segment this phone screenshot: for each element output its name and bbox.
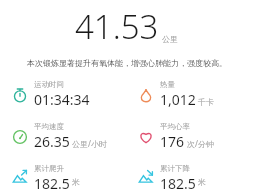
staticText: 累计爬升 — [34, 164, 64, 173]
staticText: 累计下降 — [160, 164, 190, 173]
other: 平均速度 — [12, 129, 28, 145]
staticText: 千卡 — [198, 97, 214, 107]
button[interactable]: 累计下降 — [126, 163, 253, 190]
staticText: 次/分钟 — [187, 138, 214, 149]
staticText: 182.5 — [160, 174, 196, 189]
staticText: 平均速度 — [34, 122, 64, 131]
staticText: 平均心率 — [160, 122, 190, 131]
staticText: 41.53 — [75, 4, 159, 49]
other: 热量 — [138, 87, 154, 103]
button[interactable]: 平均速度 — [0, 121, 126, 152]
button[interactable]: 累计爬升 — [0, 163, 126, 190]
staticText: 26.35 — [34, 132, 70, 151]
staticText: 01:34:34 — [34, 90, 90, 109]
staticText: 182.5 — [34, 174, 70, 189]
staticText: 运动时间 — [34, 80, 64, 89]
staticText: 米 — [198, 177, 206, 187]
staticText: 米 — [72, 177, 80, 187]
staticText: 公里 — [162, 34, 178, 44]
other: 累计爬升 — [12, 169, 28, 185]
other: 平均心率 — [138, 129, 154, 145]
button[interactable]: 运动时间 — [0, 79, 126, 110]
button[interactable]: 热量 — [126, 79, 253, 110]
other: 累计下降 — [138, 169, 154, 185]
staticText: 1,012 — [160, 90, 196, 109]
other: 运动时间 — [12, 87, 28, 103]
staticText: 本次锻炼显著提升有氧体能，增强心肺能力，强度较高。 — [27, 58, 227, 68]
staticText: 热量 — [160, 80, 175, 89]
staticText: 公里/小时 — [72, 138, 107, 149]
staticText: 176 — [160, 132, 185, 151]
button[interactable]: 平均心率 — [126, 121, 253, 152]
